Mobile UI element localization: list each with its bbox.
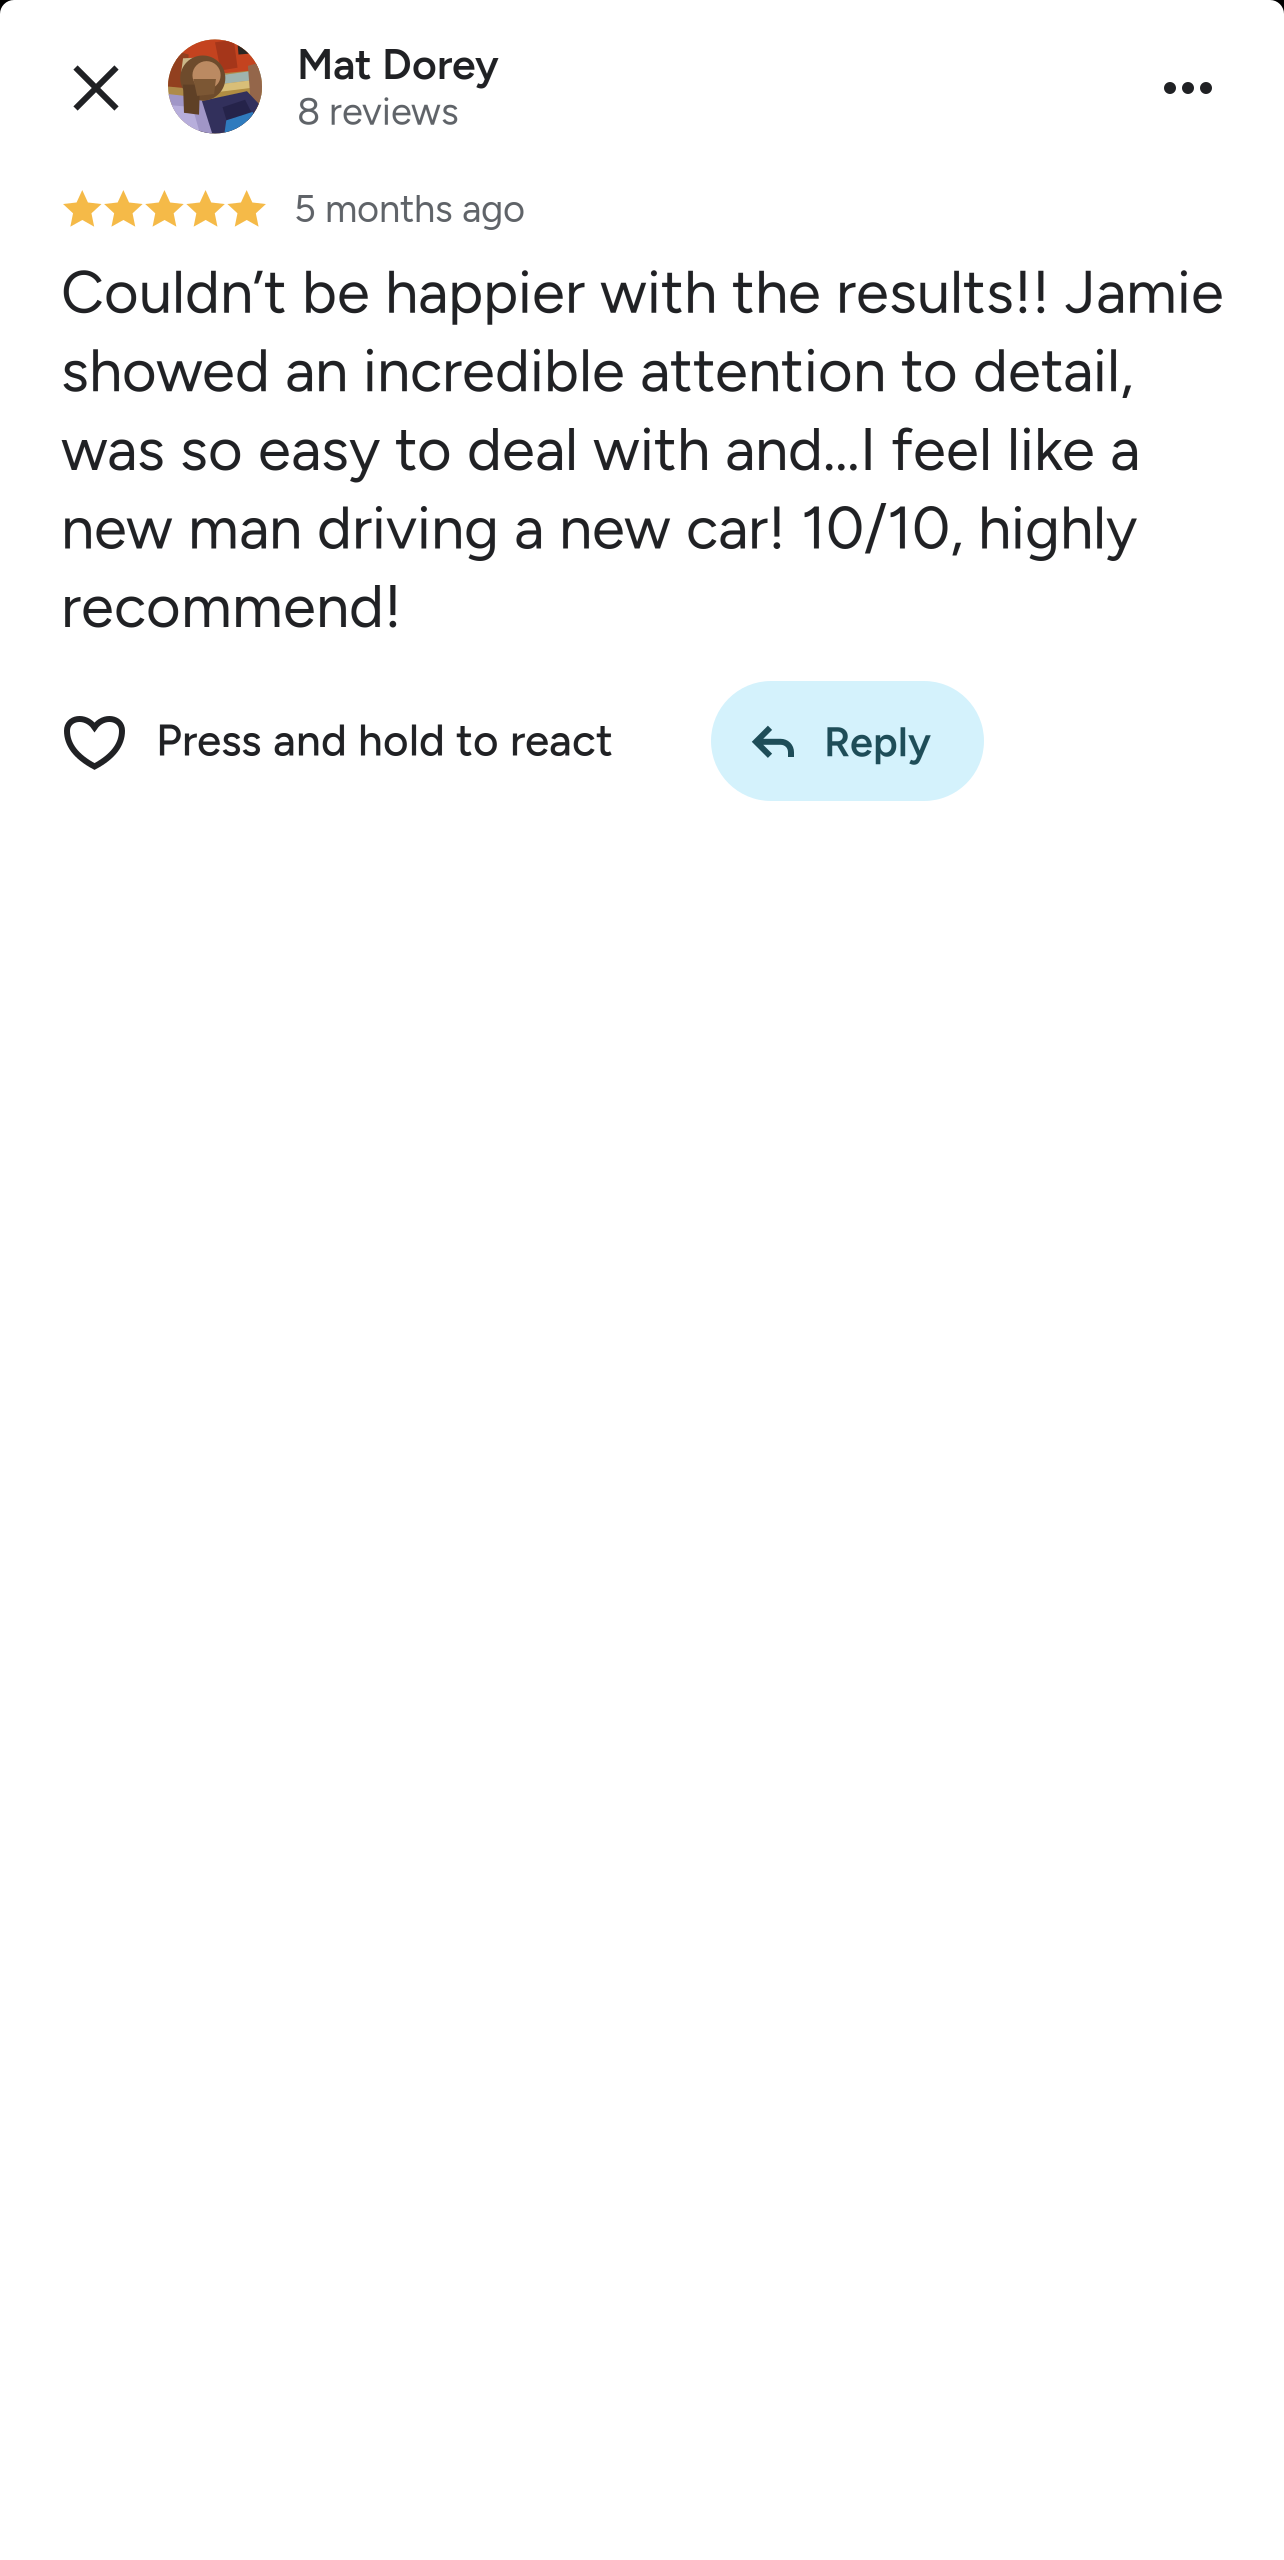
staticText: Reply (824, 717, 931, 767)
button[interactable]: Reply (711, 681, 984, 801)
button[interactable]: Press and hold to react (64, 680, 619, 800)
staticText: 8 reviews (297, 89, 459, 134)
staticText: 5 months ago (294, 186, 525, 232)
button[interactable]: More options (1136, 36, 1240, 140)
staticText: Mat Dorey (297, 38, 499, 90)
staticText: Couldn’t be happier with the results!! J… (61, 256, 1224, 642)
button[interactable]: Close (44, 36, 148, 140)
button[interactable]: Mat Dorey (168, 39, 499, 134)
staticText: Press and hold to react (156, 714, 613, 766)
